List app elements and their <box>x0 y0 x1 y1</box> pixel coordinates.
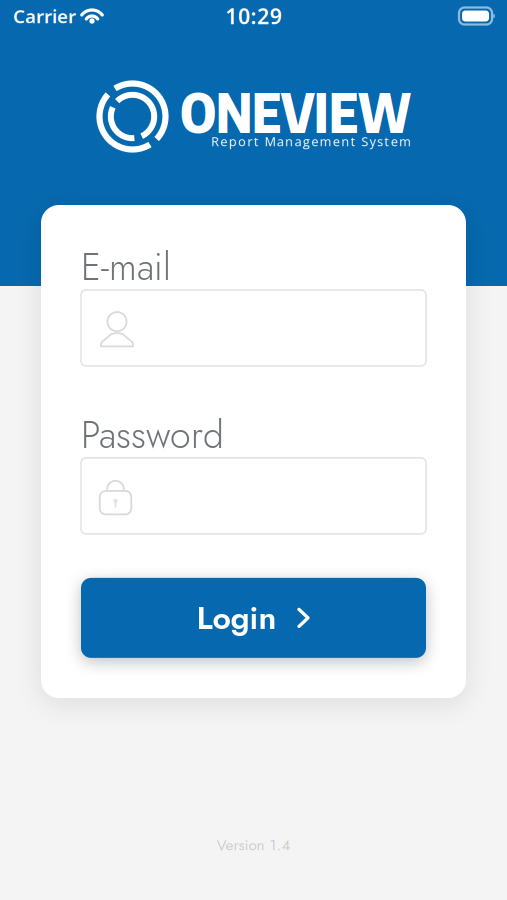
button[interactable]: Login <box>81 578 426 658</box>
staticText: Password <box>81 408 224 462</box>
staticText: Login <box>196 595 276 641</box>
staticText: 10:29 <box>225 2 282 30</box>
button[interactable]: E-mail <box>81 290 426 366</box>
staticText: Version 1.4 <box>216 834 290 856</box>
staticText: Carrier <box>13 4 76 28</box>
button[interactable]: Password <box>81 458 426 534</box>
staticText: Report Management System <box>211 133 411 150</box>
staticText: E-mail <box>81 240 171 294</box>
staticText: ONEVIEW <box>180 78 411 145</box>
